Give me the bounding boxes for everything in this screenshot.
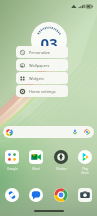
button[interactable]: Personalize [16,46,68,58]
button[interactable]: Meet [29,150,43,171]
staticText: Photos [56,167,67,171]
staticText: Play Store [78,167,92,175]
staticText: Personalize [29,50,50,55]
staticText: Home settings [29,89,56,94]
button[interactable]: Home settings [16,85,68,97]
button[interactable]: Camera [78,188,92,202]
button[interactable]: Chrome [54,188,68,202]
button[interactable]: Clock widget [31,22,67,58]
button[interactable]: Google [5,150,19,171]
button[interactable]: Photos [54,150,68,171]
staticText: Meet [32,167,40,171]
staticText: 03 [40,33,58,53]
button[interactable]: Play Store [78,150,92,175]
button[interactable]: Phone [5,188,19,202]
staticText: Widgets [29,76,44,81]
other: Google Lens [84,129,90,135]
other: Voice search [72,129,78,135]
button[interactable]: Wallpapers [16,59,68,71]
staticText: Google [7,167,18,171]
button[interactable]: Widgets [16,72,68,84]
button[interactable]: Voice search [3,126,94,138]
button[interactable]: Messages [29,188,43,202]
staticText: Wallpapers [29,63,50,68]
